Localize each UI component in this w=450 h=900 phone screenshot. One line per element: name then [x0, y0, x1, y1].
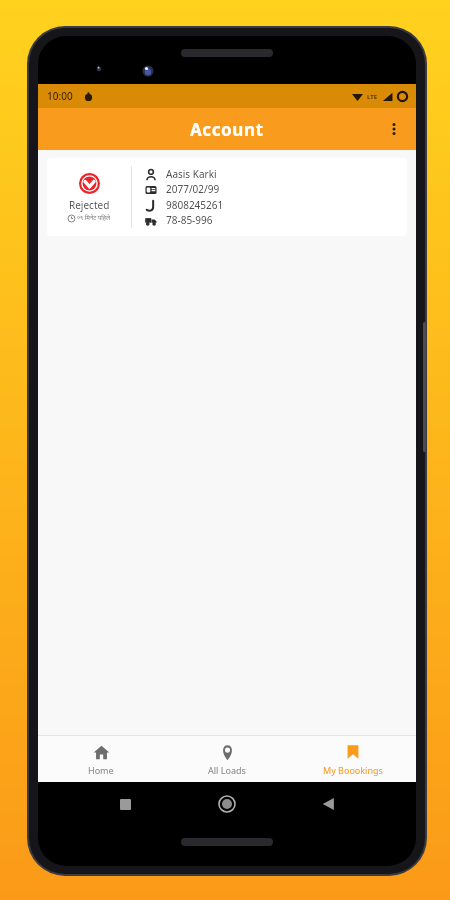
staticText: All Loads [208, 764, 246, 776]
button[interactable]: Rejected [47, 158, 407, 236]
staticText: Aasis Karki [166, 167, 217, 181]
button[interactable]: My Boookings [290, 736, 416, 782]
button[interactable]: Home [212, 789, 242, 819]
staticText: Rejected [69, 198, 110, 212]
staticText: Account [190, 118, 264, 141]
button[interactable]: All Loads [164, 736, 290, 782]
button[interactable]: Recent apps [110, 789, 140, 819]
button[interactable]: Home [38, 736, 164, 782]
button[interactable]: Back [314, 789, 344, 819]
staticText: LTE [367, 93, 378, 101]
staticText: 10:00 [47, 89, 73, 103]
staticText: Home [88, 764, 114, 776]
staticText: 2077/02/99 [166, 182, 220, 196]
button[interactable]: More options [378, 113, 410, 145]
staticText: 78-85-996 [166, 213, 213, 227]
staticText: 9808245261 [166, 198, 224, 212]
staticText: ०९ मिनेट पहिले [77, 214, 111, 222]
staticText: My Boookings [323, 764, 383, 776]
